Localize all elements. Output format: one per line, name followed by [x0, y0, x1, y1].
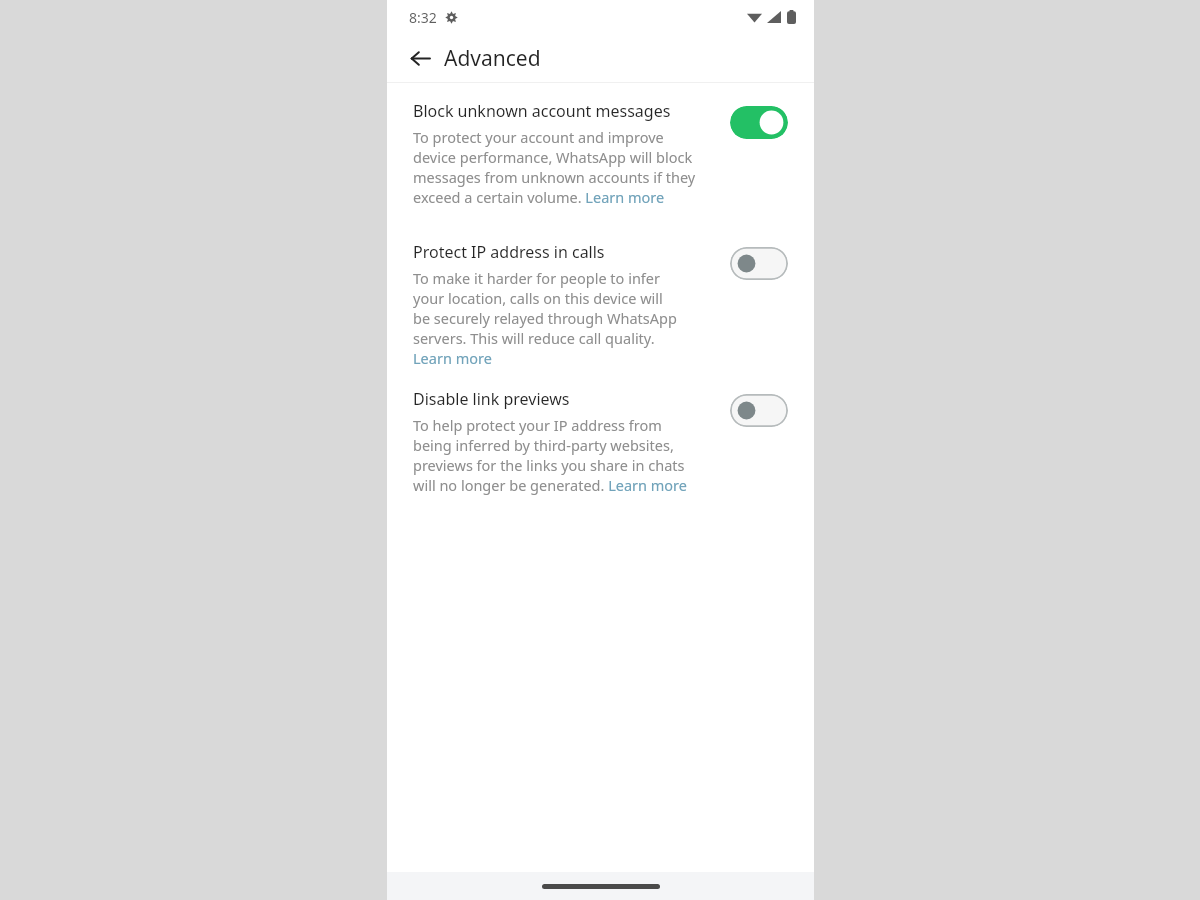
button[interactable]: Protect IP address in calls — [730, 247, 788, 280]
staticText: device performance, WhatsApp will block — [413, 147, 693, 167]
button[interactable]: Block unknown account messages — [387, 100, 814, 207]
staticText: Block unknown account messages — [413, 100, 671, 122]
staticText: servers. This will reduce call quality. — [413, 328, 655, 348]
staticText: Disable link previews — [413, 388, 570, 410]
staticText: messages from unknown accounts if they — [413, 167, 696, 187]
button[interactable]: Learn more — [413, 348, 492, 368]
staticText: To help protect your IP address from — [413, 415, 662, 435]
button[interactable]: Back — [399, 37, 441, 79]
staticText: be securely relayed through WhatsApp — [413, 308, 677, 328]
other: Home gesture bar — [542, 884, 660, 889]
staticText: To protect your account and improve — [413, 127, 664, 147]
staticText: Advanced — [444, 44, 541, 73]
button[interactable]: Disable link previews — [730, 394, 788, 427]
staticText: Protect IP address in calls — [413, 241, 605, 263]
button[interactable]: Block unknown account messages — [730, 106, 788, 139]
staticText: your location, calls on this device will — [413, 288, 663, 308]
button[interactable]: Protect IP address in calls — [387, 241, 814, 368]
button[interactable]: Disable link previews — [387, 388, 814, 495]
staticText: exceed a certain volume. Learn more — [413, 187, 665, 207]
staticText: will no longer be generated. Learn more — [413, 475, 687, 495]
staticText: 8:32 — [409, 8, 437, 27]
staticText: being inferred by third-party websites, — [413, 435, 674, 455]
staticText: To make it harder for people to infer — [413, 268, 660, 288]
staticText: previews for the links you share in chat… — [413, 455, 685, 475]
